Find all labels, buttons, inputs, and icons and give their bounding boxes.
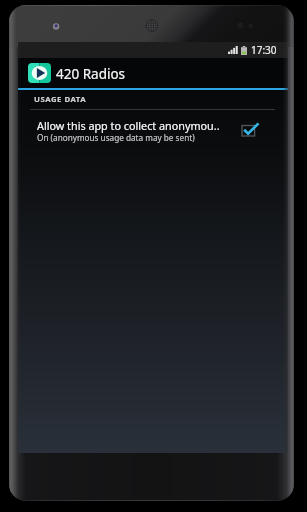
staticText: Allow this app to collect anonymou.. [37, 118, 220, 133]
staticText: 420 Radios [56, 65, 126, 83]
staticText: 17:30 [251, 43, 277, 57]
button[interactable]: Allow this app to collect anonymou.. [18, 109, 288, 141]
button[interactable]: 420 Radios [18, 58, 288, 88]
button[interactable]: Toggle anonymous usage data collection [242, 122, 259, 136]
staticText: On (anonymous usage data may be sent) [37, 132, 195, 143]
staticText: USAGE DATA [34, 94, 87, 105]
